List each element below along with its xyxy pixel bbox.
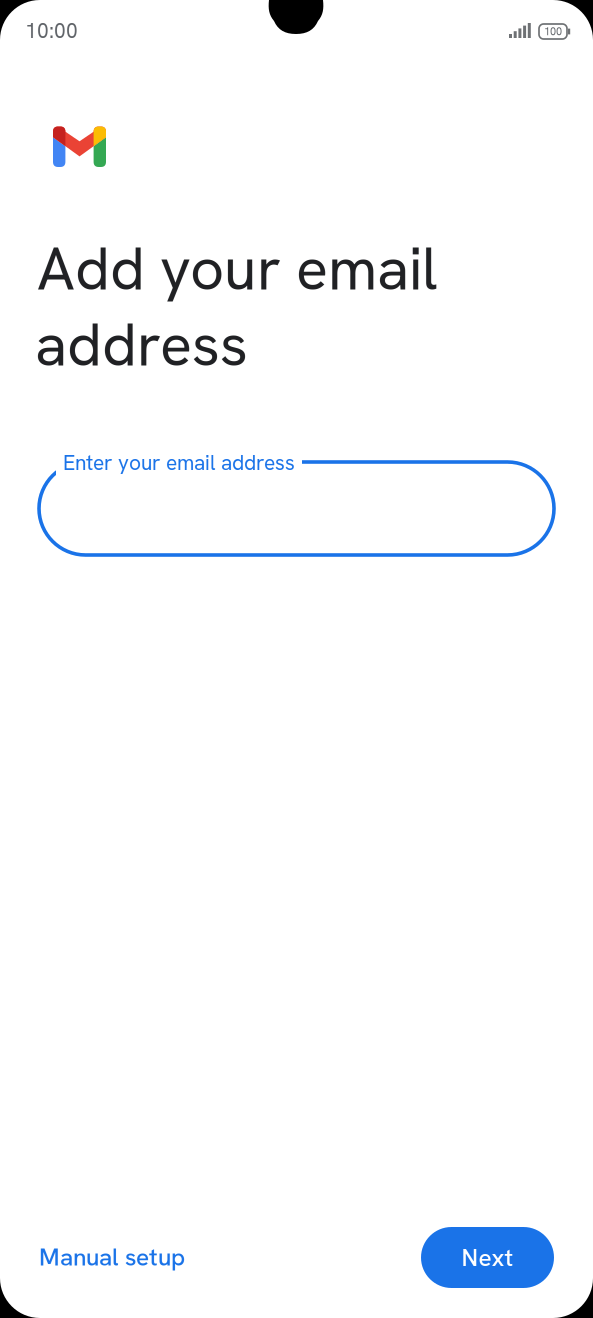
staticText: address: [35, 306, 248, 383]
button[interactable]: Enter your email address: [39, 462, 554, 555]
staticText: Manual setup: [39, 1241, 185, 1273]
staticText: Add your email: [37, 230, 438, 307]
button[interactable]: Manual setup: [39, 1227, 219, 1287]
staticText: Next: [461, 1242, 513, 1273]
staticText: 100: [544, 24, 562, 39]
staticText: 10:00: [25, 17, 78, 44]
button[interactable]: Next: [421, 1227, 554, 1288]
staticText: Enter your email address: [63, 449, 295, 476]
